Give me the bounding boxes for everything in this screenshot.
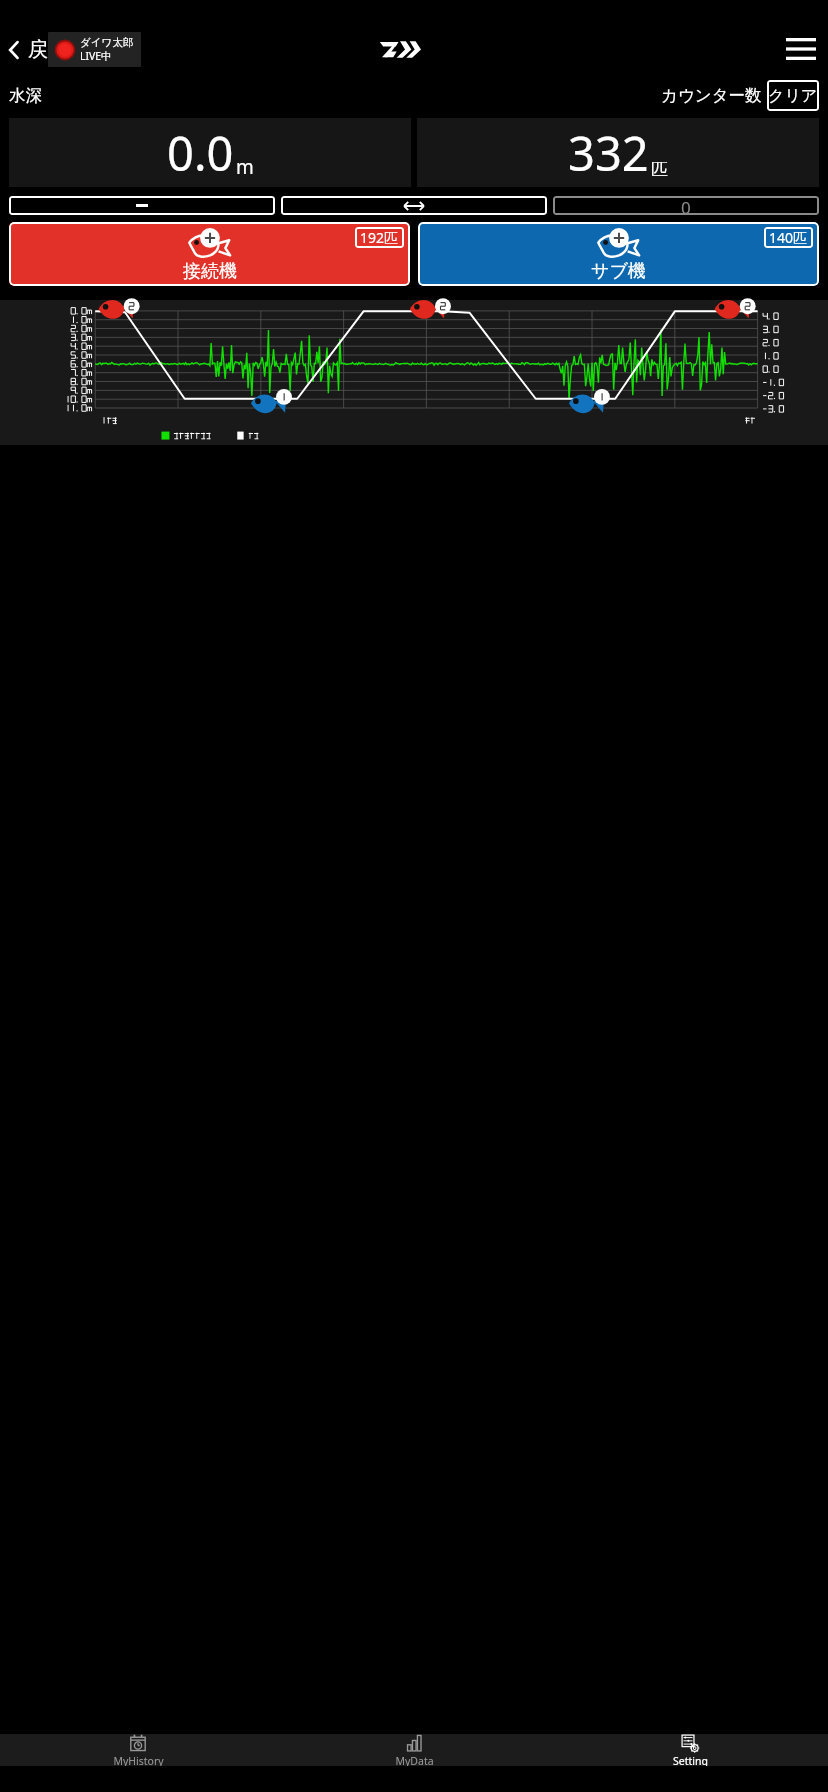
staticText: LIVE中 xyxy=(80,49,112,63)
button[interactable]: MyData xyxy=(276,1734,552,1766)
button[interactable]: 0 xyxy=(553,196,819,215)
button[interactable]: 192匹 xyxy=(9,222,410,286)
staticText: 水深 xyxy=(9,85,42,106)
button[interactable]: 戻る xyxy=(0,33,77,66)
button[interactable] xyxy=(281,196,547,215)
staticText: 接続機 xyxy=(183,260,237,283)
button[interactable]: Setting xyxy=(552,1734,828,1766)
button[interactable]: Menu xyxy=(774,32,828,66)
staticText: クリア xyxy=(768,86,818,106)
staticText: MyData xyxy=(395,1754,434,1766)
staticText: 0.0 xyxy=(167,121,234,185)
staticText: 0 xyxy=(681,196,691,215)
staticText: Setting xyxy=(673,1754,708,1766)
button[interactable]: MyHistory xyxy=(0,1734,276,1766)
button[interactable] xyxy=(9,196,275,215)
staticText: ダイワ太郎 xyxy=(80,36,134,49)
button[interactable]: 140匹 xyxy=(418,222,819,286)
staticText: 戻る xyxy=(28,37,69,62)
staticText: カウンター数 xyxy=(661,85,762,106)
staticText: 140匹 xyxy=(769,228,808,247)
staticText: 332 xyxy=(568,121,649,185)
staticText: 192匹 xyxy=(360,228,399,247)
staticText: MyHistory xyxy=(113,1754,164,1766)
button[interactable]: クリア xyxy=(767,80,819,111)
staticText: 匹 xyxy=(651,159,668,180)
staticText: サブ機 xyxy=(591,260,646,283)
staticText: m xyxy=(236,154,254,180)
button[interactable]: ダイワ太郎 xyxy=(48,32,141,67)
